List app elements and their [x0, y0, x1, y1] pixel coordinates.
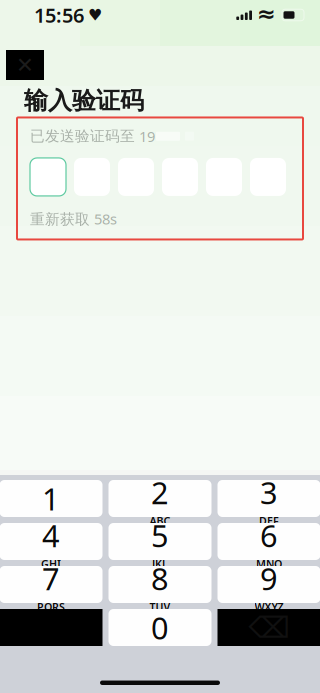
staticText: ≈: [257, 1, 276, 27]
staticText: 已发送验证码至: [30, 127, 135, 145]
button[interactable]: 1: [0, 480, 102, 517]
staticText: PQRS: [37, 600, 65, 614]
staticText: 8: [151, 558, 169, 599]
staticText: 7: [42, 558, 60, 599]
staticText: 4: [42, 515, 60, 556]
staticText: ABC: [149, 514, 170, 528]
button[interactable]: 2: [108, 480, 211, 517]
staticText: WXYZ: [254, 600, 283, 614]
staticText: 6: [260, 515, 278, 556]
button[interactable]: 5: [108, 523, 211, 560]
button[interactable]: 8: [108, 566, 211, 603]
button[interactable]: Delete: [217, 609, 320, 646]
staticText: JKL: [152, 557, 168, 571]
staticText: TUV: [149, 600, 170, 614]
staticText: 5: [151, 515, 169, 556]
staticText: DEF: [259, 514, 279, 528]
staticText: ♥: [88, 6, 102, 24]
button[interactable]: 7: [0, 566, 102, 603]
button[interactable]: 4: [0, 523, 102, 560]
button[interactable]: 6: [217, 523, 320, 560]
button[interactable]: 3: [217, 480, 320, 517]
staticText: 0: [151, 607, 169, 648]
staticText: ⌫: [248, 611, 289, 644]
staticText: 3: [260, 472, 278, 513]
staticText: 19: [135, 126, 155, 146]
button[interactable]: 0: [108, 609, 211, 646]
staticText: 1: [42, 478, 60, 519]
staticText: GHI: [41, 557, 61, 571]
staticText: ✕: [16, 53, 34, 77]
button[interactable]: Close: [6, 50, 44, 80]
button[interactable]: 9: [217, 566, 320, 603]
staticText: 15:56: [34, 2, 84, 28]
staticText: 9: [260, 558, 278, 599]
staticText: 2: [151, 472, 169, 513]
staticText: MNO: [256, 557, 282, 571]
staticText: 输入验证码: [24, 86, 144, 115]
staticText: 重新获取 58s: [30, 209, 117, 228]
